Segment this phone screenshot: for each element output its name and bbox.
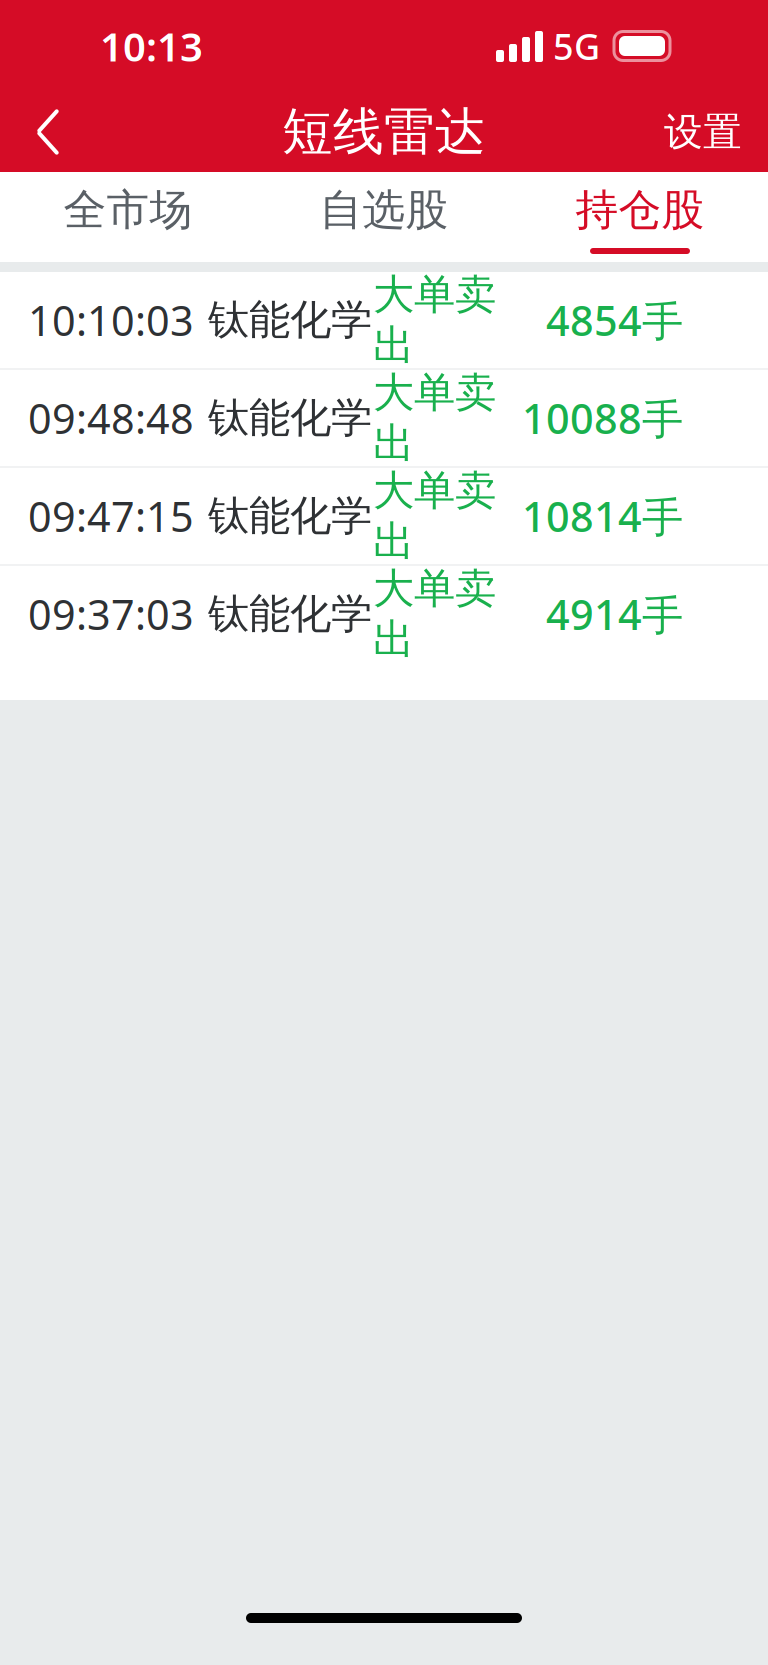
staticText: 大单卖出 xyxy=(373,367,496,469)
staticText: 09:48:48 xyxy=(28,391,194,445)
staticText: 全市场 xyxy=(63,184,192,236)
staticText: 10814手 xyxy=(522,489,683,543)
staticText: 短线雷达 xyxy=(282,101,486,163)
staticText: 大单卖出 xyxy=(373,269,496,371)
button[interactable]: 设置 xyxy=(646,92,760,172)
button[interactable]: 全市场 xyxy=(0,172,256,262)
staticText: 钛能化学 xyxy=(208,295,372,345)
staticText: 09:37:03 xyxy=(28,587,194,641)
button[interactable]: 09:48:48 xyxy=(0,370,768,466)
button[interactable]: 09:47:15 xyxy=(0,468,768,564)
button[interactable]: 返回 xyxy=(8,92,88,172)
staticText: 钛能化学 xyxy=(208,393,372,443)
staticText: 5G xyxy=(553,22,600,70)
staticText: 设置 xyxy=(664,108,742,156)
staticText: 09:47:15 xyxy=(28,489,194,543)
button[interactable]: 10:10:03 xyxy=(0,272,768,368)
staticText: 持仓股 xyxy=(575,184,704,236)
staticText: 10:10:03 xyxy=(28,293,194,347)
button[interactable]: 自选股 xyxy=(256,172,512,262)
staticText: 10088手 xyxy=(522,391,683,445)
staticText: 自选股 xyxy=(319,184,448,236)
staticText: 钛能化学 xyxy=(208,491,372,541)
staticText: 10:13 xyxy=(100,19,203,72)
staticText: 4914手 xyxy=(546,587,683,641)
staticText: 大单卖出 xyxy=(373,465,496,567)
staticText: 大单卖出 xyxy=(373,563,496,665)
staticText: 钛能化学 xyxy=(208,589,372,639)
staticText: 4854手 xyxy=(546,293,683,347)
button[interactable]: 09:37:03 xyxy=(0,566,768,662)
button[interactable]: 持仓股 xyxy=(512,172,768,262)
